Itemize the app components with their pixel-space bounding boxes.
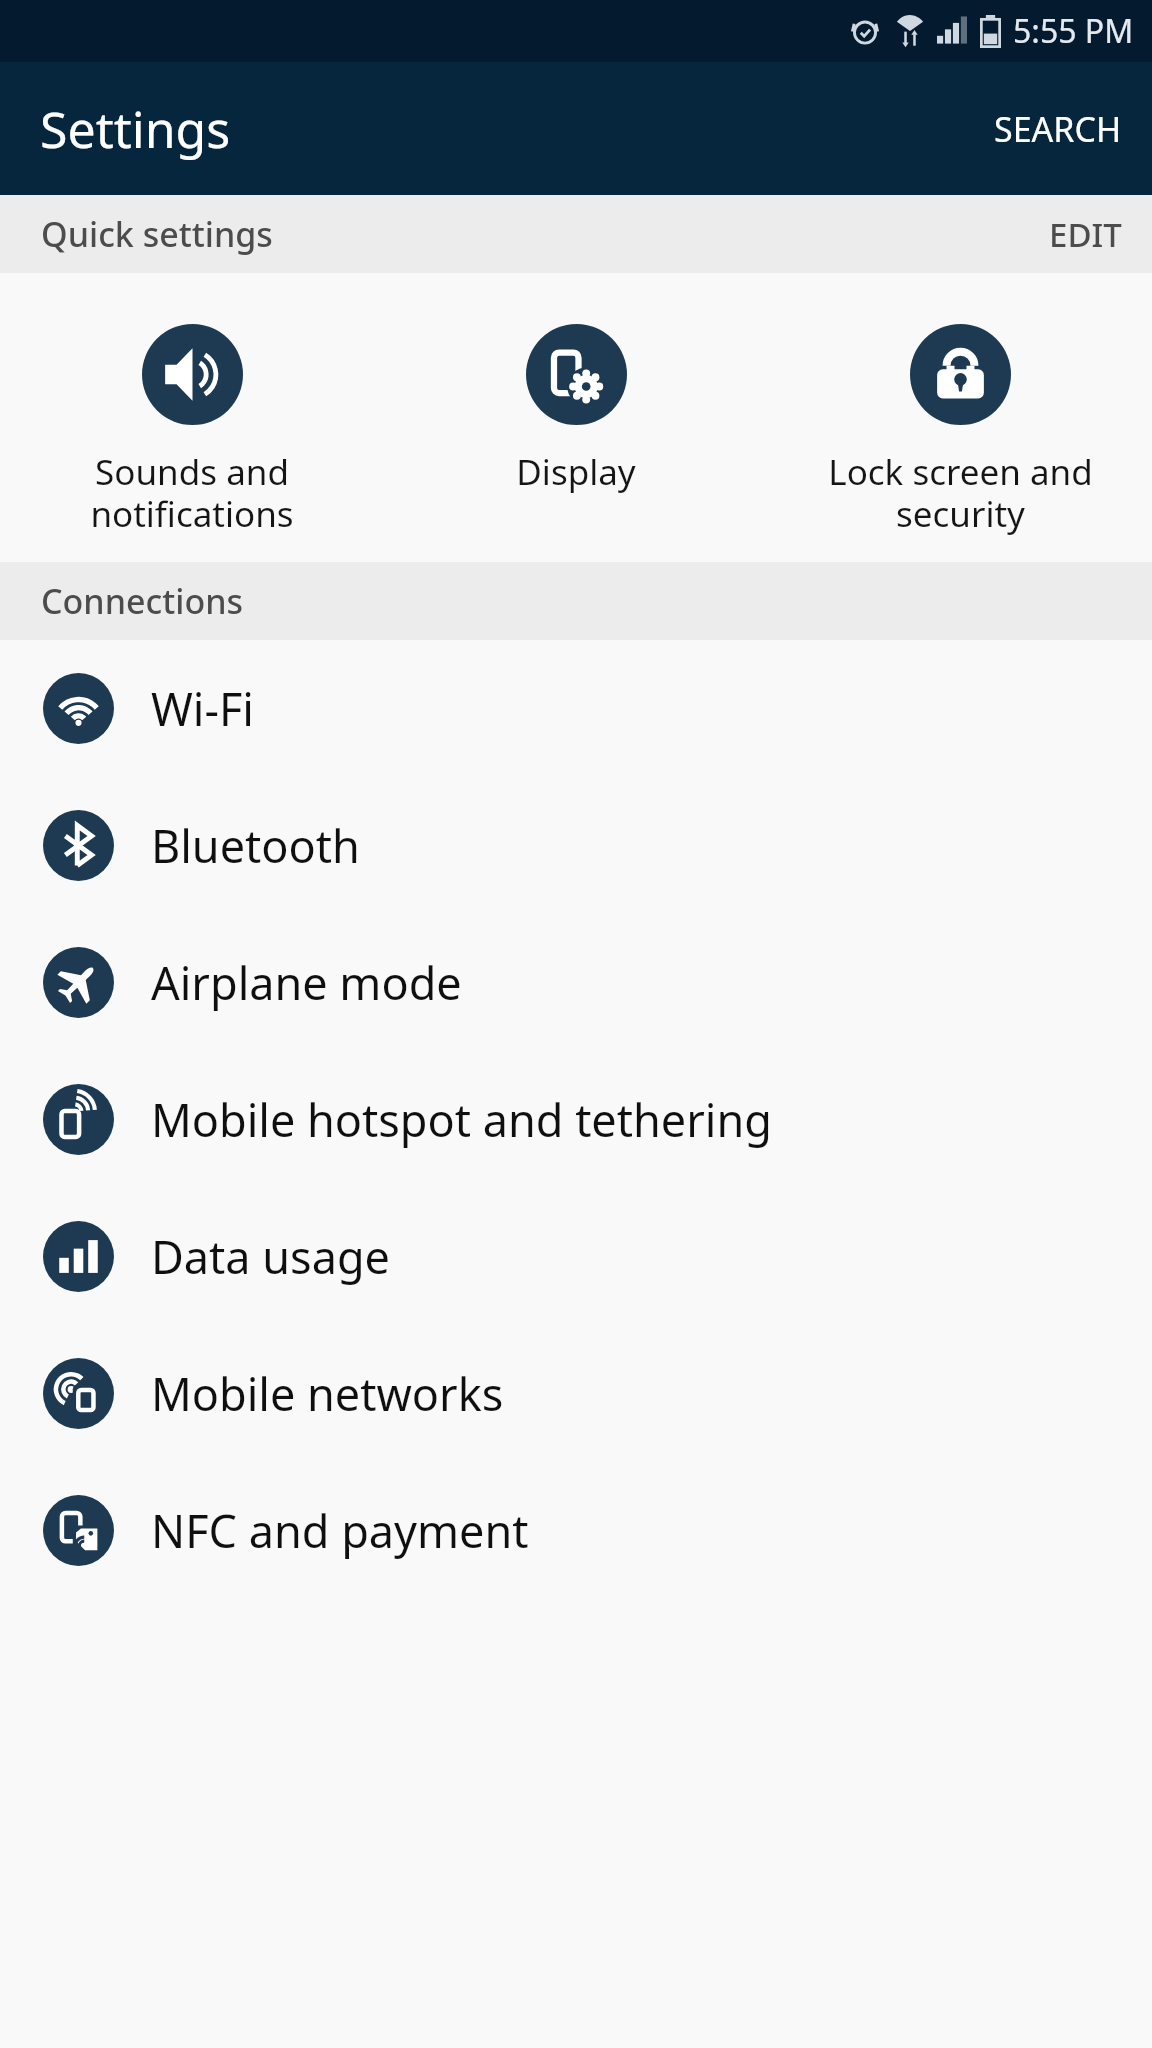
other: Hotspot: [43, 1084, 114, 1155]
button[interactable]: Data usage: [0, 1188, 1152, 1325]
button[interactable]: Sounds and notifications: [0, 273, 384, 562]
button[interactable]: Airplane mode: [0, 914, 1152, 1051]
staticText: Sounds and notifications: [90, 448, 294, 537]
other: Bluetooth: [43, 810, 114, 881]
other: Data usage: [43, 1221, 114, 1292]
button[interactable]: EDIT: [1019, 196, 1152, 273]
staticText: Lock screen and security: [828, 448, 1093, 537]
button[interactable]: Lock screen and security: [768, 273, 1152, 562]
button[interactable]: Bluetooth: [0, 777, 1152, 914]
staticText: Data usage: [151, 1226, 390, 1287]
staticText: Mobile hotspot and tethering: [151, 1089, 772, 1150]
staticText: Display: [516, 448, 636, 496]
staticText: 5:55 PM: [1013, 9, 1134, 53]
staticText: Airplane mode: [151, 952, 462, 1013]
other: Mobile networks: [43, 1358, 114, 1429]
button[interactable]: NFC: [0, 1462, 1152, 1599]
other: Wi-Fi: [43, 673, 114, 744]
staticText: SEARCH: [994, 106, 1122, 152]
other: Airplane mode: [43, 947, 114, 1018]
staticText: Settings: [40, 95, 231, 163]
staticText: Mobile networks: [151, 1363, 504, 1424]
staticText: Bluetooth: [151, 815, 360, 876]
button[interactable]: SEARCH: [964, 86, 1152, 172]
button[interactable]: Wi-Fi: [0, 640, 1152, 777]
staticText: Quick settings: [41, 211, 273, 257]
staticText: Connections: [41, 578, 244, 624]
staticText: Wi-Fi: [151, 678, 254, 739]
button[interactable]: Display: [384, 273, 768, 562]
other: NFC: [43, 1495, 114, 1566]
staticText: EDIT: [1049, 212, 1122, 257]
button[interactable]: Hotspot: [0, 1051, 1152, 1188]
button[interactable]: Mobile networks: [0, 1325, 1152, 1462]
staticText: NFC and payment: [151, 1500, 529, 1561]
